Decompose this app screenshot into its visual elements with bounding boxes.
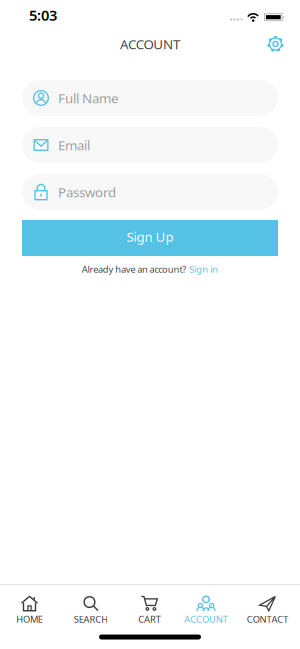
staticText: HOME bbox=[16, 613, 43, 625]
staticText: Sign Up bbox=[126, 228, 173, 245]
button[interactable]: CONTACT bbox=[238, 596, 296, 625]
button[interactable]: CART bbox=[120, 596, 178, 625]
button[interactable]: HOME bbox=[0, 596, 58, 625]
staticText: Password bbox=[58, 183, 116, 201]
staticText: CART bbox=[138, 613, 161, 625]
button[interactable] bbox=[267, 35, 284, 52]
staticText: Already have an account? bbox=[82, 263, 186, 275]
button[interactable]: Sign in bbox=[189, 263, 218, 275]
staticText: ACCOUNT bbox=[184, 613, 228, 625]
staticText: Sign in bbox=[189, 263, 218, 275]
button[interactable]: Full Name bbox=[22, 80, 278, 116]
staticText: ACCOUNT bbox=[120, 35, 180, 53]
staticText: SEARCH bbox=[74, 613, 108, 625]
button[interactable]: Email bbox=[22, 127, 278, 163]
button[interactable]: Sign Up bbox=[22, 220, 278, 256]
button[interactable]: Password bbox=[22, 174, 278, 210]
staticText: CONTACT bbox=[247, 613, 288, 625]
staticText: Email bbox=[58, 136, 90, 154]
staticText: 5:03 bbox=[29, 5, 57, 25]
button[interactable]: ACCOUNT bbox=[177, 596, 235, 625]
staticText: Full Name bbox=[58, 89, 119, 107]
button[interactable]: SEARCH bbox=[62, 596, 120, 625]
